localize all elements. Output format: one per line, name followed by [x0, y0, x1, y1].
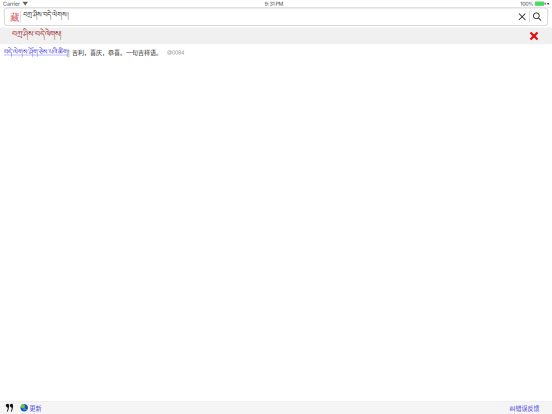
- staticText: 吉利，喜庆，恭喜。一句吉祥语。: [72, 48, 162, 56]
- staticText: །: [68, 44, 69, 63]
- button[interactable]: 更新: [20, 402, 41, 414]
- button[interactable]: བདེ་ལེགས་ཤོག་ཅེས་པའི་ཚིག: [4, 44, 68, 63]
- button[interactable]: Back and forward: [4, 402, 14, 414]
- button[interactable]: 纠错误反馈: [509, 402, 539, 414]
- button[interactable]: Search: [530, 9, 545, 25]
- staticText: བཀྲ་ཤིས་བདེ་ལེགས།: [12, 25, 62, 47]
- staticText: 9:31 PM: [265, 0, 284, 7]
- staticText: 纠错误反馈: [509, 403, 539, 412]
- staticText: 更新: [29, 403, 41, 412]
- staticText: Carrier: [3, 0, 20, 7]
- staticText: བདེ་ལེགས་ཤོག་ཅེས་པའི་ཚིག: [4, 44, 68, 63]
- staticText: 藏: [10, 10, 19, 23]
- button[interactable]: Clear: [515, 9, 529, 25]
- staticText: བཀྲ་ཤིས་བདེ་ལེགས།: [23, 7, 68, 26]
- button[interactable]: Close entry: [524, 28, 544, 44]
- staticText: 100%: [520, 0, 533, 7]
- staticText: @0084: [167, 49, 184, 56]
